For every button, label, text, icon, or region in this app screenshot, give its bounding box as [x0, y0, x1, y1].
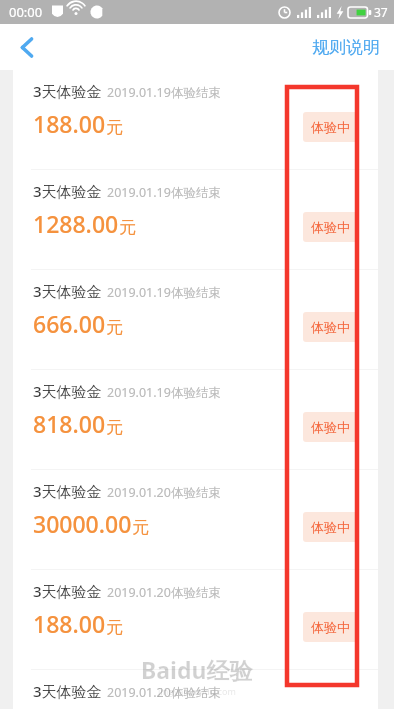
staticText: 元: [106, 317, 123, 338]
button[interactable]: 体验中: [303, 612, 358, 642]
staticText: 3天体验金: [33, 681, 102, 701]
button[interactable]: 3天体验金: [13, 170, 378, 269]
staticText: jingyan.baidu.com: [158, 685, 236, 697]
staticText: 30000.00: [33, 508, 132, 539]
staticText: 规则说明: [312, 37, 380, 58]
button[interactable]: 3天体验金: [13, 270, 378, 369]
staticText: 元: [106, 617, 123, 638]
button[interactable]: 3天体验金: [13, 670, 378, 709]
staticText: 1288.00: [33, 208, 119, 239]
staticText: 3天体验金: [33, 481, 102, 501]
button[interactable]: 体验中: [303, 312, 358, 342]
staticText: 37: [374, 4, 388, 20]
staticText: 666.00: [33, 308, 106, 339]
staticText: 3天体验金: [33, 381, 102, 401]
staticText: 体验中: [311, 119, 350, 135]
button[interactable]: 体验中: [303, 412, 358, 442]
staticText: 188.00: [33, 608, 106, 639]
staticText: 2019.01.20体验结束: [107, 584, 221, 601]
staticText: 体验中: [311, 219, 350, 235]
staticText: 2019.01.20体验结束: [107, 684, 221, 701]
staticText: 818.00: [33, 408, 106, 439]
staticText: 元: [106, 117, 123, 138]
button[interactable]: 3天体验金: [13, 570, 378, 669]
staticText: 2019.01.19体验结束: [107, 284, 221, 301]
button[interactable]: Back: [0, 24, 54, 70]
staticText: 188.00: [33, 108, 106, 139]
staticText: 2019.01.19体验结束: [107, 184, 221, 201]
staticText: 3天体验金: [33, 81, 102, 101]
staticText: 体验中: [311, 519, 350, 535]
button[interactable]: 体验中: [303, 512, 358, 542]
button[interactable]: 3天体验金: [13, 470, 378, 569]
staticText: 2019.01.19体验结束: [107, 84, 221, 101]
button[interactable]: 3天体验金: [13, 70, 378, 169]
staticText: 00:00: [9, 3, 43, 21]
staticText: 元: [106, 417, 123, 438]
staticText: 体验中: [311, 319, 350, 335]
staticText: 3天体验金: [33, 181, 102, 201]
staticText: 元: [119, 217, 136, 238]
button[interactable]: 3天体验金: [13, 370, 378, 469]
button[interactable]: 规则说明: [298, 24, 394, 70]
staticText: 体验中: [311, 419, 350, 435]
staticText: 2019.01.20体验结束: [107, 484, 221, 501]
staticText: 3天体验金: [33, 281, 102, 301]
staticText: Baidu经验: [141, 654, 253, 685]
staticText: 元: [132, 517, 149, 538]
staticText: 体验中: [311, 619, 350, 635]
button[interactable]: 体验中: [303, 212, 358, 242]
staticText: 2019.01.19体验结束: [107, 384, 221, 401]
button[interactable]: 体验中: [303, 112, 358, 142]
staticText: 3天体验金: [33, 581, 102, 601]
